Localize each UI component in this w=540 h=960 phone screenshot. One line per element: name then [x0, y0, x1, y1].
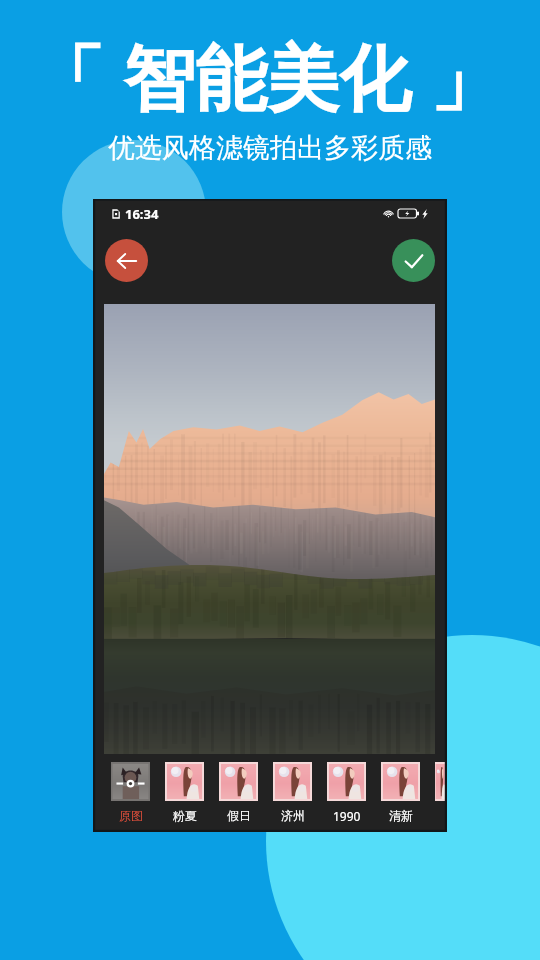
button[interactable]: Confirm — [392, 239, 435, 282]
button[interactable]: Back — [105, 239, 148, 282]
staticText: 粉夏 — [173, 808, 197, 823]
button[interactable] — [435, 762, 447, 824]
button[interactable]: 粉夏 — [165, 762, 204, 823]
staticText: 16:34 — [125, 205, 159, 223]
staticText: 济州 — [281, 808, 305, 823]
staticText: 清新 — [389, 808, 413, 823]
staticText: 优选风格滤镜拍出多彩质感 — [108, 131, 432, 165]
staticText: 假日 — [227, 808, 251, 823]
button[interactable]: 假日 — [219, 762, 258, 823]
button[interactable]: 清新 — [381, 762, 420, 823]
button[interactable]: 1990 — [327, 762, 366, 824]
button[interactable]: 原图 — [111, 762, 150, 823]
button[interactable]: 济州 — [273, 762, 312, 823]
staticText: 「 智能美化 」 — [32, 27, 502, 125]
staticText: 原图 — [119, 808, 143, 823]
staticText: 1990 — [333, 808, 361, 824]
